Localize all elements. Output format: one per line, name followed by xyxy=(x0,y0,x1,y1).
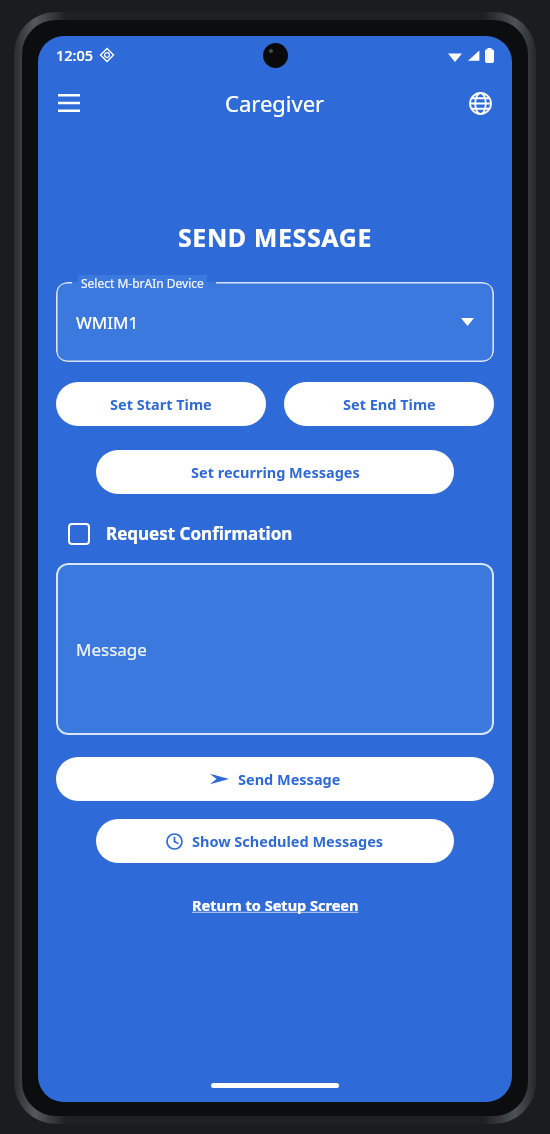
staticText: Send Message xyxy=(238,769,341,789)
staticText: Select M-brAIn Device xyxy=(81,275,204,291)
button[interactable]: Set End Time xyxy=(284,382,494,426)
staticText: Request Confirmation xyxy=(106,522,293,545)
button[interactable]: Send Message xyxy=(56,757,494,801)
button[interactable]: Set Start Time xyxy=(56,382,266,426)
button[interactable]: WMIM1 xyxy=(56,282,494,362)
staticText: Caregiver xyxy=(225,88,325,118)
button[interactable]: Show Scheduled Messages xyxy=(96,819,454,863)
staticText: Set recurring Messages xyxy=(191,462,360,482)
button[interactable]: Return to Setup Screen xyxy=(184,889,367,921)
staticText: 12:05 xyxy=(56,45,94,65)
staticText: Message xyxy=(76,638,147,661)
staticText: WMIM1 xyxy=(76,311,139,334)
button[interactable]: Request Confirmation xyxy=(68,522,293,545)
staticText: Set Start Time xyxy=(110,394,212,414)
staticText: SEND MESSAGE xyxy=(38,220,512,254)
button[interactable]: Change language xyxy=(459,82,502,125)
button[interactable]: Set recurring Messages xyxy=(96,450,454,494)
button[interactable]: Message xyxy=(56,563,494,735)
staticText: Set End Time xyxy=(343,394,436,414)
button[interactable]: Open navigation menu xyxy=(46,82,92,124)
staticText: Show Scheduled Messages xyxy=(192,831,384,851)
